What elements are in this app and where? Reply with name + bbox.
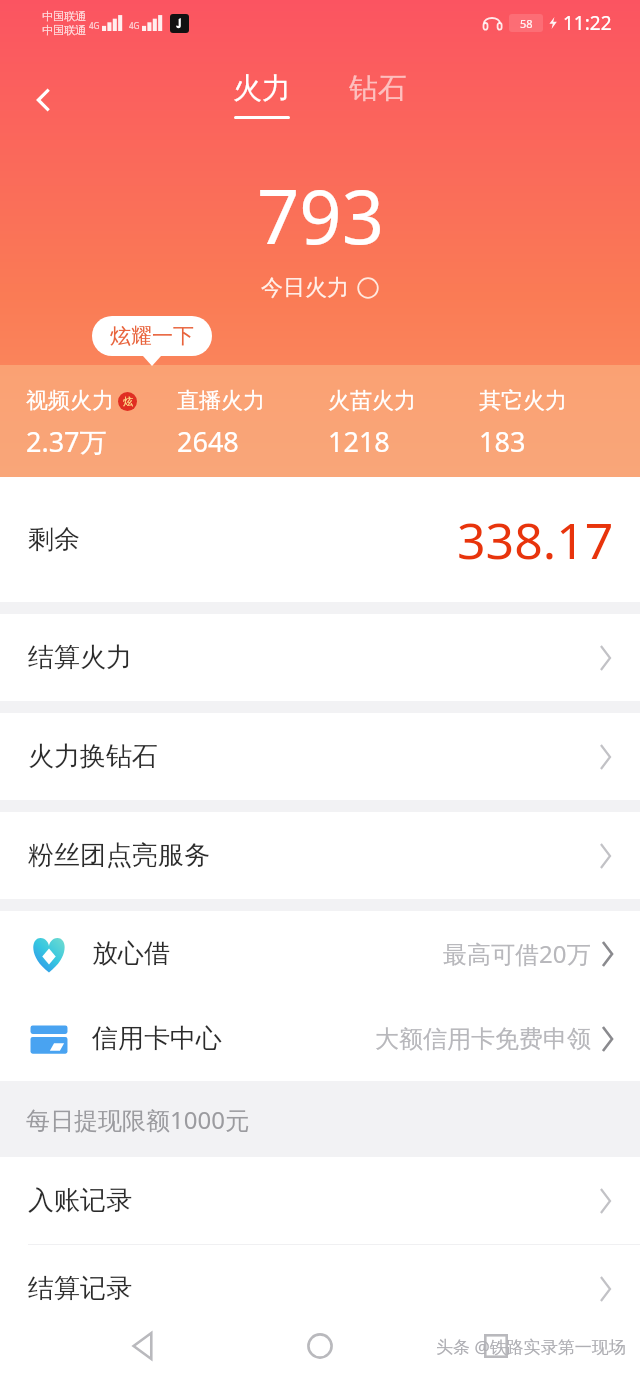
button[interactable]: Back (18, 74, 70, 126)
button[interactable]: 视频火力 (26, 365, 177, 460)
staticText: 其它火力 (479, 387, 567, 415)
staticText: 头条 @铁路实录第一现场 (436, 1335, 626, 1358)
button[interactable]: 钻石 (339, 70, 417, 119)
staticText: 粉丝团点亮服务 (28, 839, 210, 872)
staticText: 火力 (233, 70, 291, 107)
staticText: 火苗火力 (328, 387, 416, 415)
staticText: 每日提现限额1000元 (26, 1103, 249, 1136)
button[interactable]: 火力换钻石 (0, 713, 640, 800)
staticText: 钻石 (349, 70, 407, 107)
staticText: 2648 (177, 423, 239, 460)
button[interactable]: 火力 (223, 70, 301, 119)
staticText: 结算记录 (28, 1272, 132, 1305)
button[interactable]: 信用卡中心 (0, 996, 640, 1081)
button[interactable]: 放心借 (0, 911, 640, 996)
staticText: 放心借 (92, 937, 170, 970)
button[interactable]: 入账记录 (0, 1157, 640, 1244)
button[interactable]: 直播火力 (177, 365, 328, 460)
button[interactable]: 剩余 (0, 477, 640, 602)
button[interactable]: 炫耀一下 (92, 316, 212, 366)
staticText: 大额信用卡免费申领 (375, 1024, 591, 1054)
button[interactable]: Back (112, 1314, 176, 1378)
staticText: 2.37万 (26, 423, 107, 460)
button[interactable]: 粉丝团点亮服务 (0, 812, 640, 899)
button[interactable]: 火苗火力 (328, 365, 479, 460)
button[interactable]: 结算火力 (0, 614, 640, 701)
staticText: 结算火力 (28, 641, 132, 674)
staticText: 信用卡中心 (92, 1022, 222, 1055)
button[interactable]: Recents (464, 1314, 528, 1378)
button[interactable]: Home (288, 1314, 352, 1378)
button[interactable]: 其它火力 (479, 365, 630, 460)
staticText: 4G (89, 20, 100, 31)
staticText: 4G (129, 20, 140, 31)
staticText: 1218 (328, 423, 390, 460)
staticText: 视频火力 (26, 387, 114, 415)
staticText: 炫耀一下 (110, 323, 194, 349)
staticText: 火力换钻石 (28, 740, 158, 773)
staticText: 炫 (123, 395, 133, 408)
staticText: 183 (479, 423, 526, 460)
staticText: 338.17 (457, 506, 614, 574)
staticText: 入账记录 (28, 1184, 132, 1217)
staticText: 直播火力 (177, 387, 265, 415)
staticText: 中国联通 (42, 9, 86, 23)
staticText: 今日火力 (261, 274, 349, 302)
staticText: 中国联通 (42, 23, 86, 37)
staticText: 最高可借20万 (443, 937, 591, 970)
staticText: 11:22 (563, 10, 612, 36)
staticText: 58 (520, 16, 533, 31)
staticText: 剩余 (28, 523, 80, 556)
staticText: 793 (257, 165, 384, 266)
button[interactable]: 结算记录 (0, 1245, 640, 1332)
